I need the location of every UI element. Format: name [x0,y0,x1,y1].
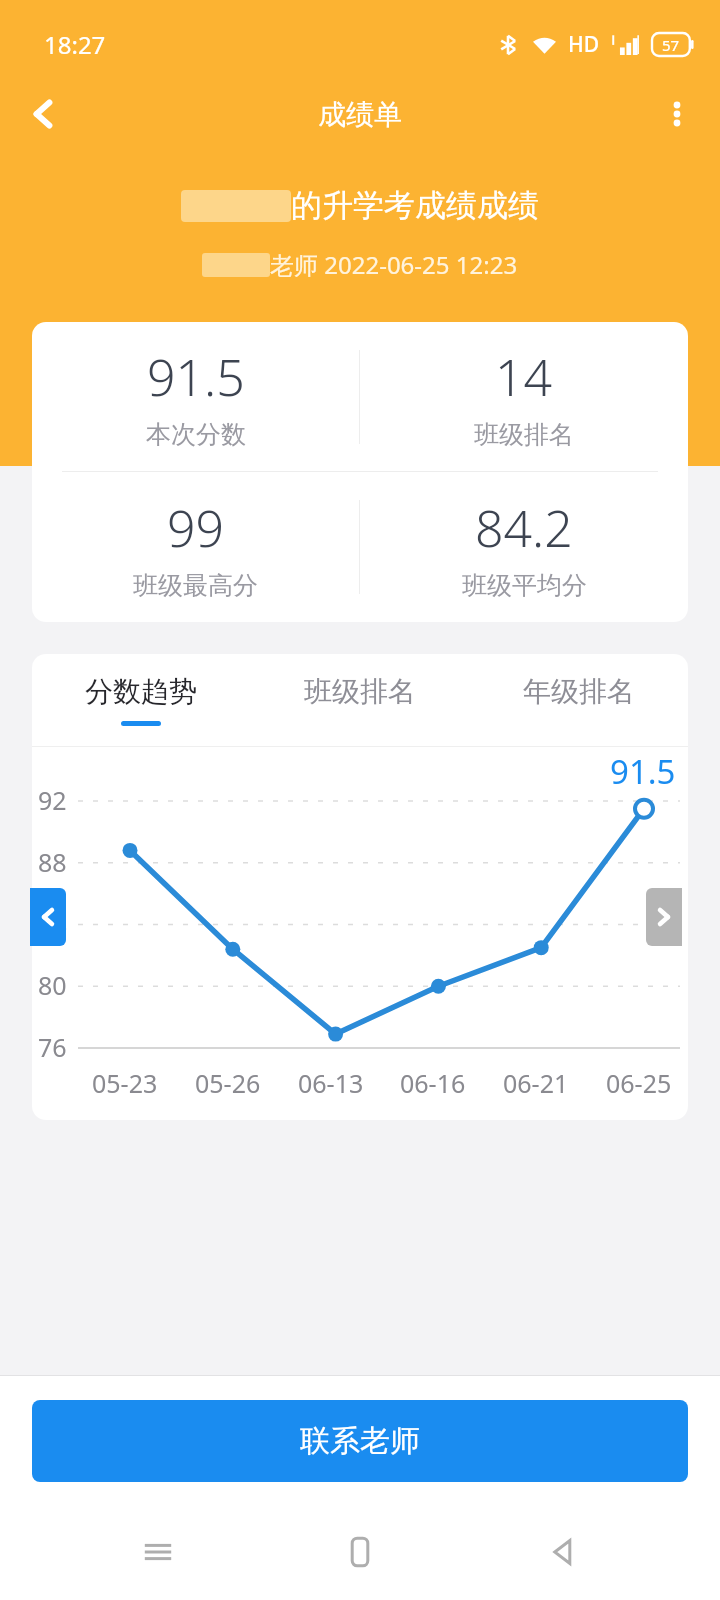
staticText: 88 [38,845,67,879]
staticText: 联系老师 [300,1422,420,1460]
button[interactable]: 14 [360,322,688,471]
staticText: 80 [38,968,67,1002]
staticText: 班级最高分 [133,570,258,601]
button[interactable]: Next page [646,888,682,946]
staticText: 91.5 [610,749,676,794]
button[interactable]: 84.2 [360,472,688,622]
staticText: 05-26 [195,1066,261,1100]
staticText: 84.2 [475,494,573,562]
staticText: 18:27 [44,28,106,61]
staticText: 班级排名 [304,674,416,709]
button[interactable]: More options [634,71,720,157]
button[interactable]: 91.5 [32,322,359,471]
button[interactable]: Back [0,71,86,157]
staticText: 06-16 [400,1066,466,1100]
staticText: 05-23 [92,1066,158,1100]
staticText: 本次分数 [146,419,246,450]
staticText: HD [568,30,600,59]
button[interactable]: 99 [32,472,359,622]
button[interactable]: 联系老师 [32,1400,688,1482]
button[interactable]: Previous page [30,888,66,946]
button[interactable]: Home [330,1522,390,1582]
staticText: 年级排名 [523,674,635,709]
staticText: 班级平均分 [462,570,587,601]
staticText: 06-21 [503,1066,569,1100]
staticText: 14 [495,343,553,411]
staticText: 57 [662,35,680,55]
staticText: 分数趋势 [85,674,197,709]
staticText: 06-25 [606,1066,672,1100]
staticText: 84 [38,907,67,941]
staticText: 老师 2022-06-25 12:23 [270,248,518,281]
staticText: 班级排名 [474,419,574,450]
button[interactable]: 分数趋势 [32,654,250,746]
staticText: 91.5 [147,343,245,411]
staticText: 成绩单 [318,97,402,132]
staticText: 的升学考成绩成绩 [291,186,539,225]
button[interactable]: 班级排名 [250,654,469,746]
staticText: 76 [38,1030,67,1064]
staticText: 92 [38,783,67,817]
button[interactable]: Back [532,1522,592,1582]
staticText: 06-13 [298,1066,364,1100]
button[interactable]: Recent apps [128,1522,188,1582]
staticText: 99 [167,494,225,562]
button[interactable]: 年级排名 [469,654,688,746]
